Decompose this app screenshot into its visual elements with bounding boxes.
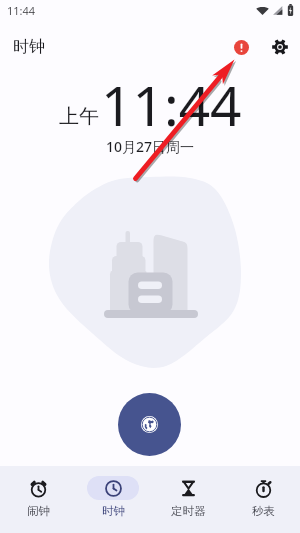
button[interactable]: World clock	[118, 393, 181, 456]
staticText: 时钟	[102, 504, 125, 518]
button[interactable]: Settings	[267, 34, 293, 60]
staticText: 定时器	[171, 504, 206, 518]
staticText: 11:44	[7, 3, 36, 18]
button[interactable]: 秒表	[225, 466, 300, 533]
staticText: 上午	[59, 104, 99, 129]
button[interactable]: 时钟	[75, 466, 150, 533]
staticText: 秒表	[252, 504, 275, 518]
button[interactable]: 闹钟	[0, 466, 75, 533]
staticText: 11:44	[101, 67, 242, 142]
staticText: 闹钟	[27, 504, 50, 518]
staticText: 10月27日周一	[106, 137, 195, 156]
button[interactable]: 定时器	[150, 466, 225, 533]
button[interactable]: Warning	[228, 34, 254, 60]
staticText: 时钟	[13, 37, 45, 57]
